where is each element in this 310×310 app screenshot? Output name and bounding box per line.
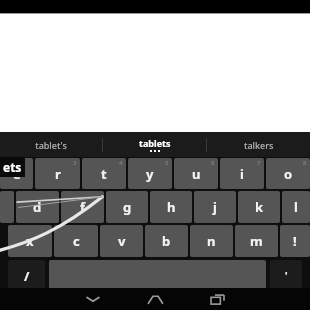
staticText: j <box>213 198 217 216</box>
button[interactable]: tablets <box>103 132 206 157</box>
button[interactable]: k <box>238 191 280 223</box>
button[interactable]: h <box>150 191 192 223</box>
staticText: i <box>240 165 244 183</box>
staticText: b <box>162 232 171 250</box>
staticText: k <box>255 198 264 216</box>
staticText: ets <box>3 159 22 175</box>
button[interactable]: ! <box>280 225 310 257</box>
staticText: u <box>192 165 201 183</box>
staticText: ' <box>285 269 288 283</box>
button[interactable]: tablet's <box>0 132 102 157</box>
staticText: tablet's <box>35 139 67 151</box>
staticText: 5 <box>165 159 169 167</box>
button[interactable]: n <box>190 225 233 257</box>
staticText: l <box>294 198 298 216</box>
staticText: f <box>80 198 86 216</box>
button[interactable]: 8 <box>266 158 310 189</box>
staticText: y <box>146 165 154 183</box>
staticText: 8 <box>303 159 307 167</box>
staticText: x <box>26 232 34 250</box>
button[interactable]: Recent apps <box>186 288 248 310</box>
button[interactable] <box>0 191 14 223</box>
button[interactable]: g <box>106 191 148 223</box>
staticText: n <box>207 232 216 250</box>
button[interactable] <box>49 260 266 291</box>
staticText: h <box>167 198 176 216</box>
staticText: tablets <box>139 137 171 149</box>
button[interactable]: Hide keyboard <box>62 288 124 310</box>
button[interactable]: j <box>194 191 236 223</box>
button[interactable]: l <box>282 191 310 223</box>
button[interactable]: c <box>54 225 98 257</box>
button[interactable]: 4 <box>82 158 126 189</box>
staticText: 7 <box>257 159 261 167</box>
staticText: g <box>123 198 132 216</box>
button[interactable]: ' <box>270 260 302 291</box>
button[interactable]: x <box>8 225 52 257</box>
button[interactable]: Home <box>124 288 186 310</box>
staticText: 3 <box>73 159 77 167</box>
button[interactable]: 6 <box>174 158 218 189</box>
staticText: / <box>24 267 30 285</box>
staticText: o <box>284 165 293 183</box>
button[interactable]: v <box>100 225 143 257</box>
staticText: ! <box>293 232 297 250</box>
button[interactable]: e <box>0 158 33 189</box>
button[interactable]: b <box>145 225 188 257</box>
staticText: m <box>250 232 263 250</box>
button[interactable]: m <box>235 225 278 257</box>
button[interactable]: d <box>16 191 59 223</box>
staticText: v <box>118 232 126 250</box>
staticText: talkers <box>244 139 274 151</box>
staticText: t <box>101 165 107 183</box>
staticText: d <box>33 198 42 216</box>
button[interactable]: talkers <box>207 132 310 157</box>
staticText: e <box>13 165 21 183</box>
staticText: c <box>73 232 80 250</box>
button[interactable]: 3 <box>35 158 80 189</box>
staticText: 4 <box>119 159 123 167</box>
staticText: 6 <box>211 159 215 167</box>
button[interactable]: / <box>8 260 45 291</box>
button[interactable]: 7 <box>220 158 264 189</box>
button[interactable]: f <box>61 191 104 223</box>
staticText: r <box>55 165 61 183</box>
button[interactable]: 5 <box>128 158 172 189</box>
